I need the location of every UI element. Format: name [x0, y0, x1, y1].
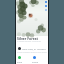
staticText: Lena Vale, in Nordica [22, 47, 46, 50]
staticText: Share [32, 61, 38, 64]
staticText: Snow settles across the silver branches [17, 51, 47, 54]
button[interactable]: Lena Vale, in Nordica [18, 46, 47, 50]
staticText: A quiet winter morning among tall pines [17, 40, 47, 43]
staticText: Save [17, 61, 22, 64]
button[interactable]: Share [31, 56, 38, 64]
button[interactable]: Favourite [16, 56, 23, 64]
staticText: Silver Forest [17, 36, 38, 41]
